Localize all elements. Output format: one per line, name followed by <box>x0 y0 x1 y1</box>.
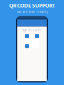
staticText: scan and share instantly <box>16 10 47 14</box>
staticText: QR CODE SUPPORT <box>9 2 55 9</box>
staticText: Scan this code <box>22 28 41 32</box>
